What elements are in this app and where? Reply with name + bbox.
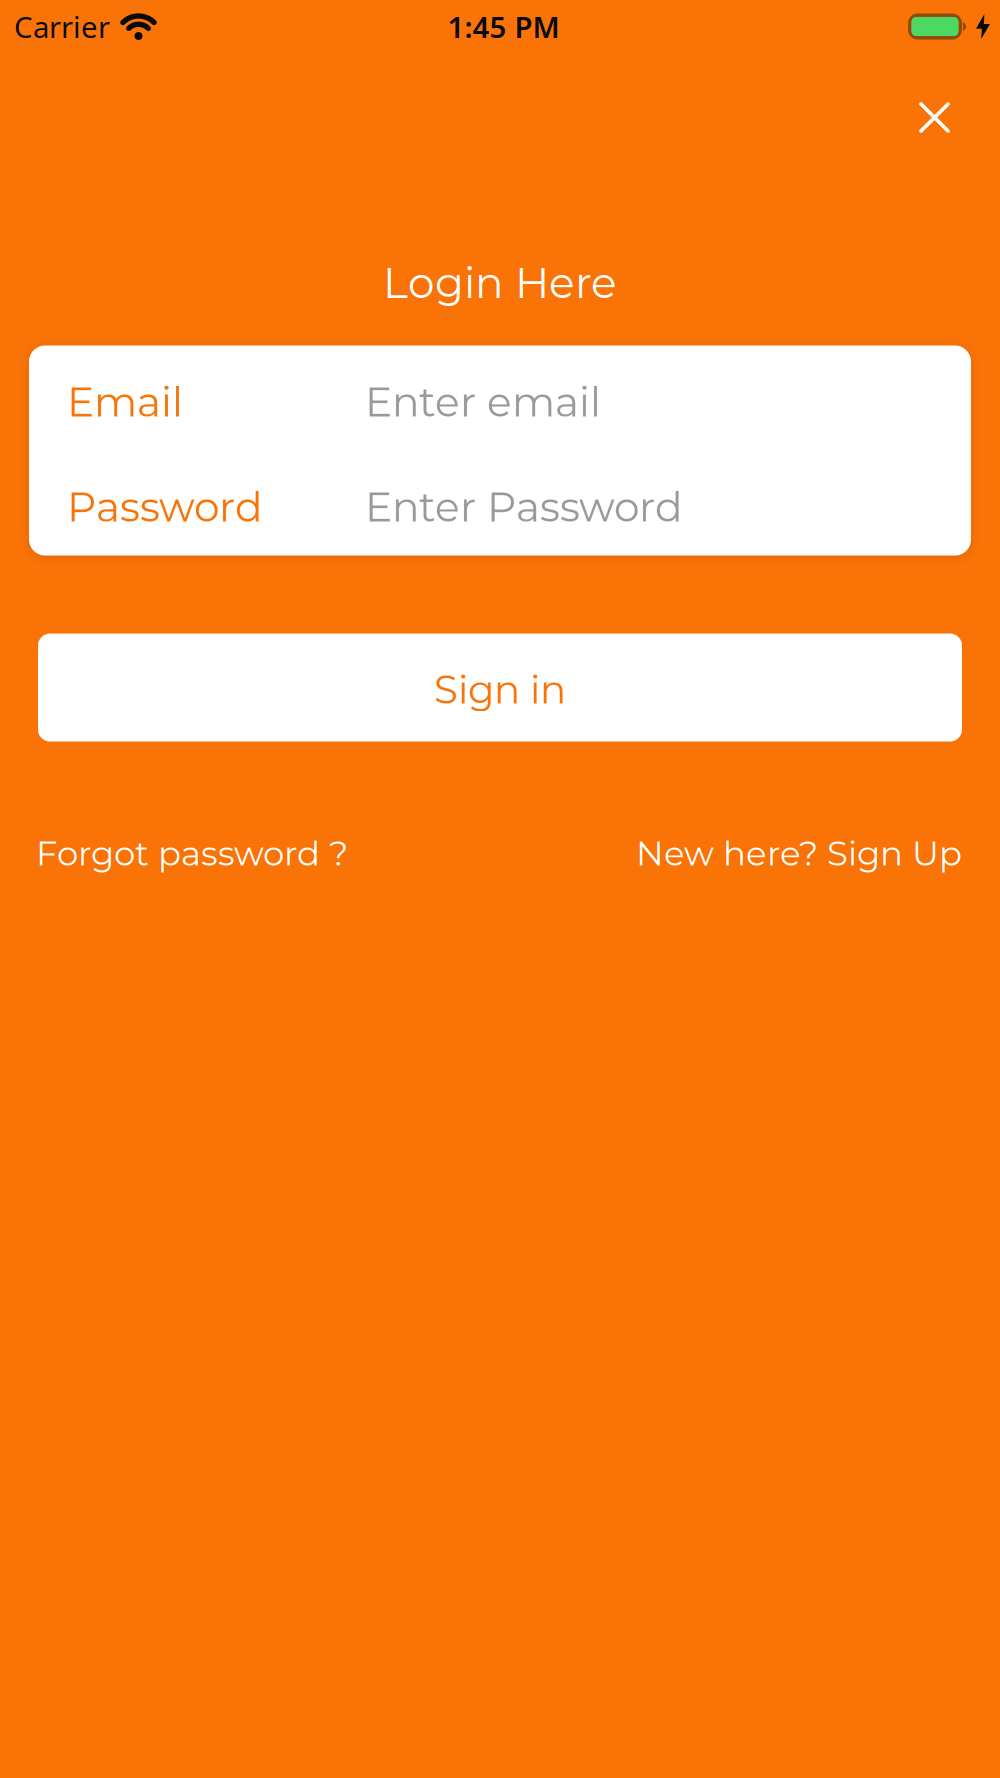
staticText: 1:45 PM (447, 7, 559, 46)
staticText: Login Here (383, 257, 617, 308)
button[interactable]: Email (67, 345, 971, 458)
staticText: Email (67, 377, 183, 427)
button[interactable]: Sign in (38, 633, 962, 741)
staticText: Enter Password (365, 482, 683, 532)
staticText: New here? Sign Up (636, 832, 962, 874)
button[interactable]: Password (67, 458, 971, 555)
staticText: Enter email (365, 377, 601, 427)
staticText: Forgot password ? (36, 832, 348, 874)
button[interactable]: New here? Sign Up (636, 832, 962, 874)
button[interactable]: Close (913, 96, 956, 139)
staticText: Carrier (14, 7, 110, 46)
staticText: Password (67, 482, 263, 532)
button[interactable]: Forgot password ? (36, 832, 348, 874)
staticText: Sign in (434, 666, 566, 713)
